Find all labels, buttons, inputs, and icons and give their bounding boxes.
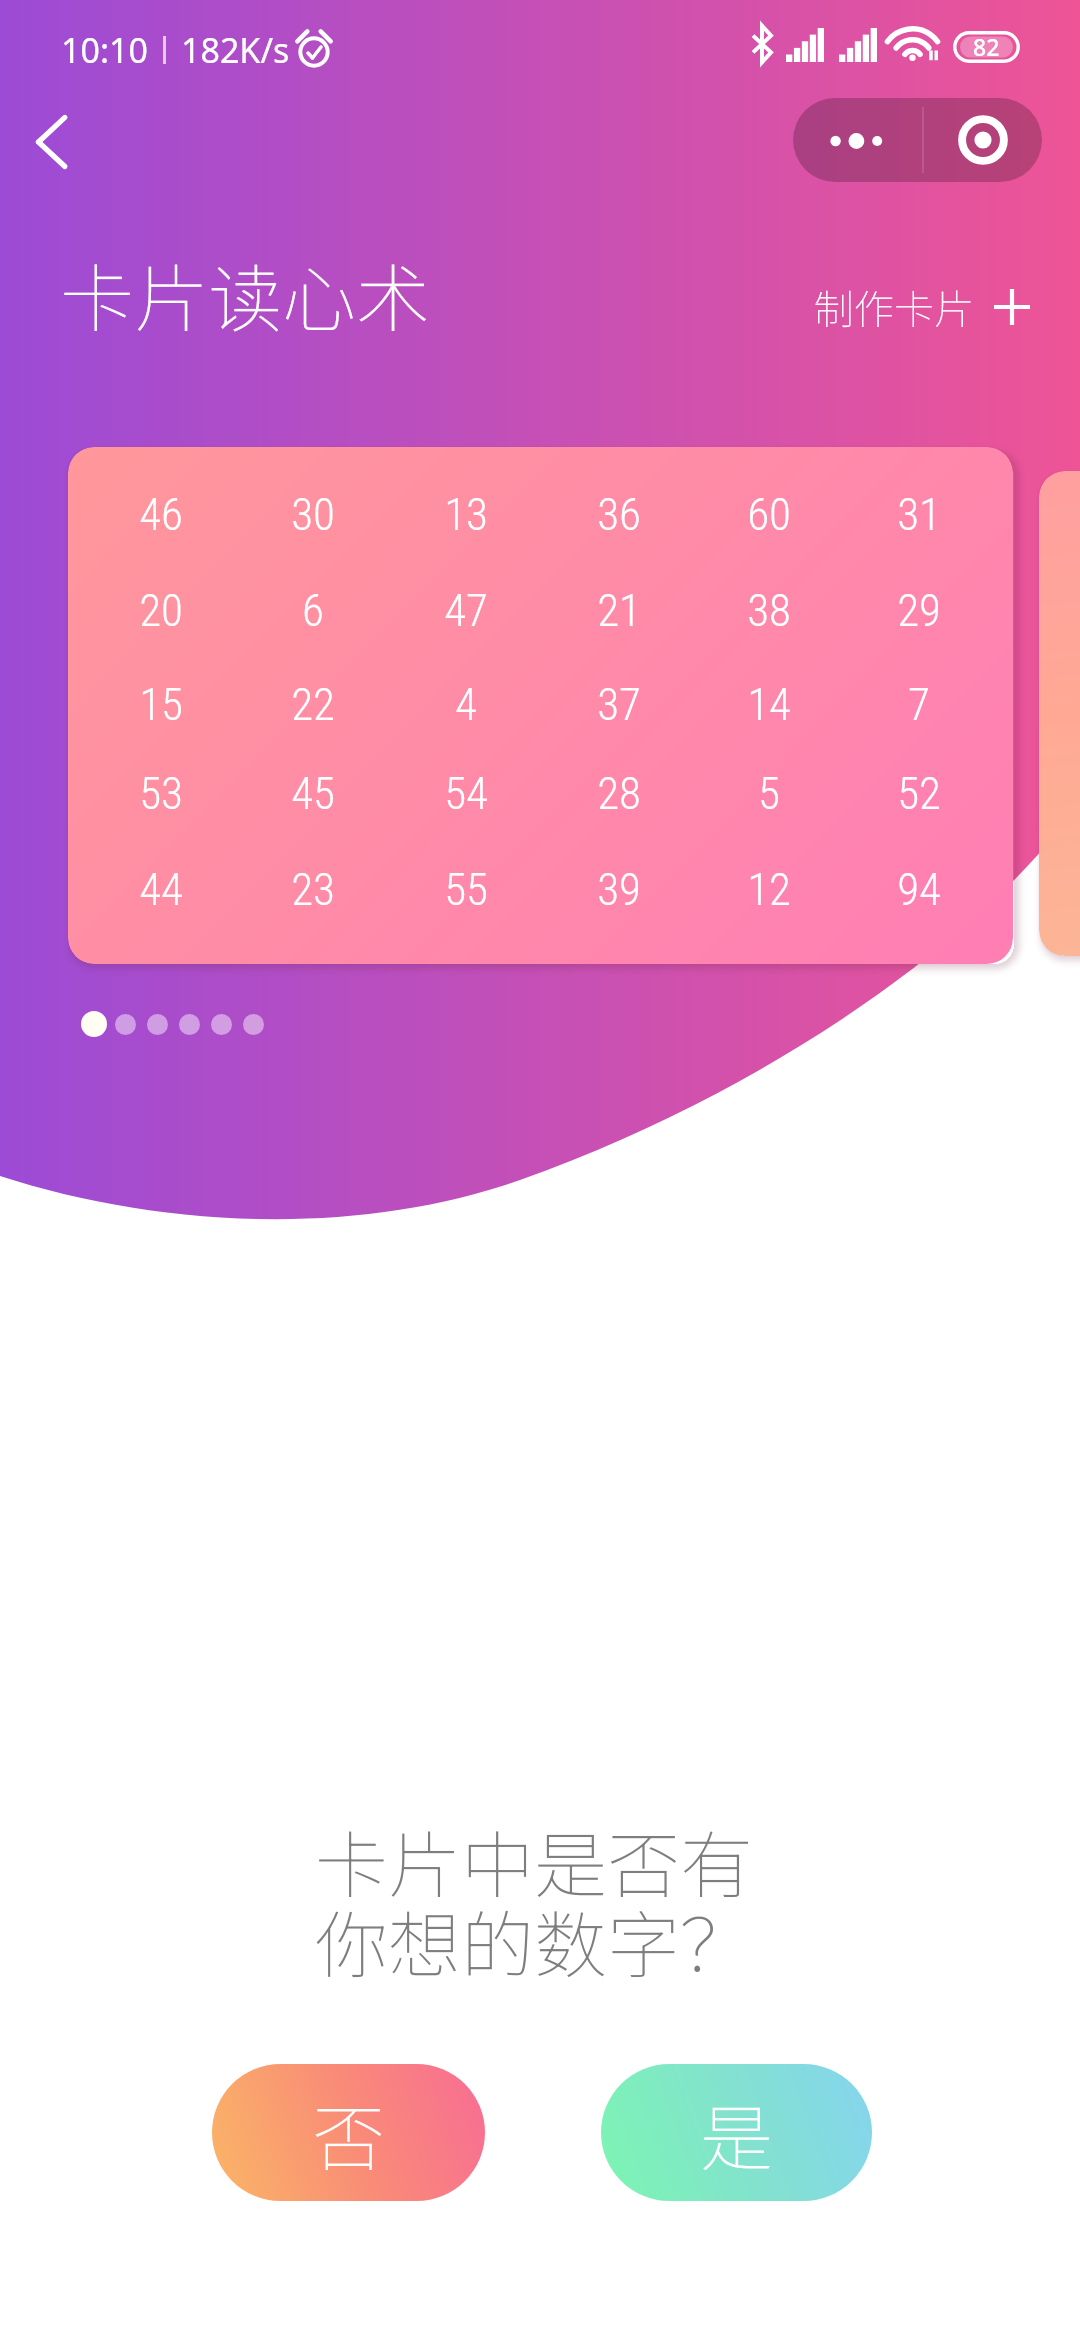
staticText: 82 bbox=[973, 31, 1000, 62]
staticText: 38 bbox=[747, 584, 791, 637]
button[interactable]: More options bbox=[793, 98, 922, 182]
staticText: 13 bbox=[444, 488, 488, 541]
staticText: 4 bbox=[455, 678, 477, 731]
button[interactable]: Go to card 4 bbox=[179, 1014, 200, 1035]
staticText: 44 bbox=[139, 863, 183, 916]
staticText: 15 bbox=[139, 678, 183, 731]
button[interactable]: 是 bbox=[601, 2064, 872, 2201]
staticText: 54 bbox=[444, 767, 488, 820]
staticText: 23 bbox=[291, 863, 335, 916]
button[interactable]: Next card bbox=[1039, 471, 1080, 956]
button[interactable]: Go to card 2 bbox=[115, 1014, 136, 1035]
staticText: 52 bbox=[897, 767, 941, 820]
staticText: 10:10 bbox=[61, 27, 148, 73]
staticText: 30 bbox=[291, 488, 335, 541]
staticText: 37 bbox=[597, 678, 641, 731]
staticText: 47 bbox=[444, 584, 488, 637]
button[interactable]: Number card 1 bbox=[68, 447, 1013, 964]
staticText: 28 bbox=[597, 767, 641, 820]
staticText: 制作卡片 bbox=[814, 278, 974, 336]
staticText: 14 bbox=[747, 678, 791, 731]
button[interactable]: Back bbox=[4, 94, 100, 190]
button[interactable]: 否 bbox=[212, 2064, 485, 2201]
staticText: 22 bbox=[291, 678, 335, 731]
staticText: 182K/s bbox=[181, 27, 290, 73]
button[interactable]: Go to card 1 bbox=[81, 1011, 107, 1037]
button[interactable]: Go to card 5 bbox=[211, 1014, 232, 1035]
button[interactable]: 制作卡片 bbox=[814, 278, 1030, 336]
staticText: 是 bbox=[700, 2080, 773, 2186]
button[interactable]: Go to card 3 bbox=[147, 1014, 168, 1035]
staticText: 卡片中是否有 你想的数字？ bbox=[0, 1807, 1074, 1993]
staticText: 21 bbox=[597, 584, 641, 637]
staticText: 否 bbox=[312, 2080, 385, 2186]
staticText: 29 bbox=[897, 584, 941, 637]
staticText: 31 bbox=[897, 488, 941, 541]
staticText: 6 bbox=[302, 584, 324, 637]
staticText: 94 bbox=[897, 863, 941, 916]
staticText: 卡片读心术 bbox=[60, 240, 430, 347]
staticText: 46 bbox=[139, 488, 183, 541]
staticText: 12 bbox=[747, 863, 791, 916]
staticText: 36 bbox=[597, 488, 641, 541]
staticText: 20 bbox=[139, 584, 183, 637]
button[interactable]: Go to card 6 bbox=[243, 1014, 264, 1035]
staticText: 7 bbox=[908, 678, 930, 731]
staticText: 39 bbox=[597, 863, 641, 916]
button[interactable]: Close mini program bbox=[924, 98, 1042, 182]
staticText: 60 bbox=[747, 488, 791, 541]
staticText: 53 bbox=[139, 767, 183, 820]
staticText: 45 bbox=[291, 767, 335, 820]
staticText: 5 bbox=[758, 767, 780, 820]
staticText: 55 bbox=[444, 863, 488, 916]
